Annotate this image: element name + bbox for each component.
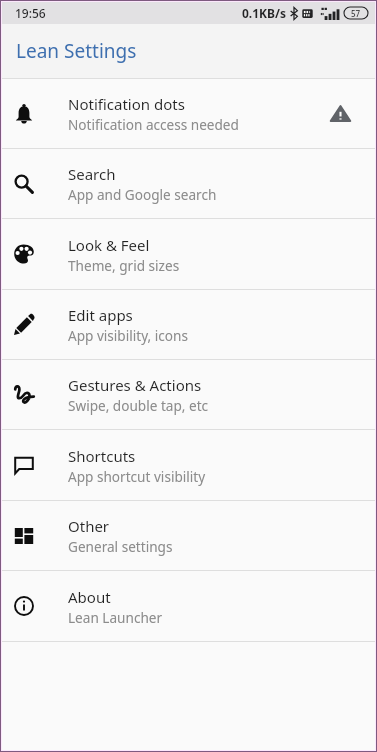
button[interactable]: Edit apps: [2, 290, 375, 359]
staticText: Theme, grid sizes: [68, 256, 180, 275]
button[interactable]: Gestures & Actions: [2, 360, 375, 429]
staticText: Notification access needed: [68, 115, 239, 134]
staticText: 57: [351, 8, 361, 19]
staticText: 19:56: [15, 5, 46, 21]
button[interactable]: Other: [2, 501, 375, 570]
staticText: Edit apps: [68, 305, 133, 325]
staticText: Other: [68, 516, 110, 536]
staticText: Lean Launcher: [68, 608, 163, 627]
staticText: Look & Feel: [68, 235, 150, 255]
staticText: App and Google search: [68, 185, 217, 204]
button[interactable]: Look & Feel: [2, 219, 375, 289]
button[interactable]: Shortcuts: [2, 430, 375, 500]
staticText: General settings: [68, 537, 173, 556]
staticText: Lean Settings: [16, 38, 137, 64]
staticText: About: [68, 587, 111, 607]
button[interactable]: Notification dots: [2, 79, 375, 148]
other: Warning: [305, 103, 375, 124]
staticText: 0.1KB/s: [242, 5, 287, 21]
staticText: App shortcut visibility: [68, 467, 206, 486]
staticText: App visibility, icons: [68, 326, 188, 345]
button[interactable]: Search: [2, 149, 375, 218]
staticText: Gestures & Actions: [68, 375, 202, 395]
staticText: Shortcuts: [68, 446, 136, 466]
button[interactable]: About: [2, 571, 375, 641]
staticText: Search: [68, 164, 116, 184]
staticText: Swipe, double tap, etc: [68, 396, 209, 415]
staticText: Notification dots: [68, 94, 185, 114]
